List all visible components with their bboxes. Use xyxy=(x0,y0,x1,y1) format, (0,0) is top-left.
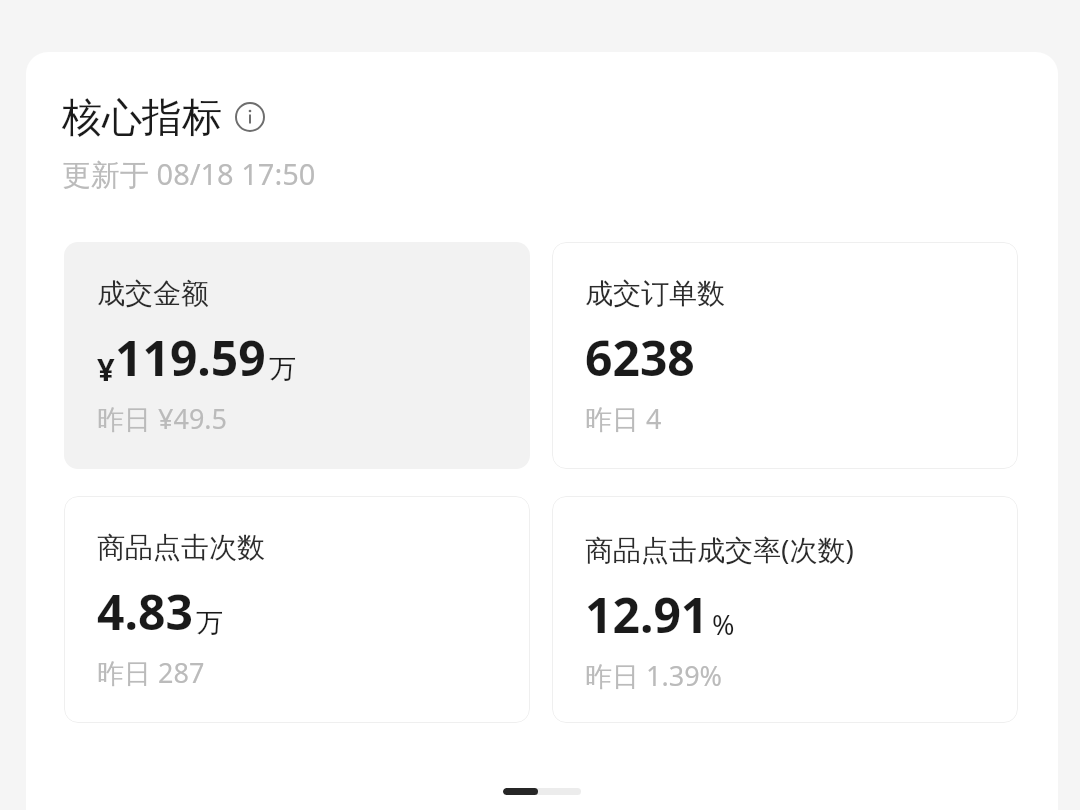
staticText: 万 xyxy=(196,606,223,640)
staticText: 成交订单数 xyxy=(585,276,725,311)
staticText: ¥ xyxy=(97,348,115,390)
staticText: 119.59 xyxy=(115,325,266,390)
staticText: 商品点击次数 xyxy=(97,530,265,565)
staticText: 昨日 1.39% xyxy=(585,657,723,694)
staticText: 成交金额 xyxy=(97,276,209,311)
button[interactable]: 商品点击次数 xyxy=(64,496,530,723)
button[interactable]: 商品点击成交率(次数) xyxy=(552,496,1018,723)
button[interactable]: Info xyxy=(235,102,265,132)
staticText: 核心指标 xyxy=(62,92,222,142)
button[interactable]: 成交订单数 xyxy=(552,242,1018,469)
staticText: % xyxy=(712,606,735,643)
staticText: 昨日 4 xyxy=(585,400,662,437)
staticText: 昨日 287 xyxy=(97,654,205,691)
staticText: 更新于 08/18 17:50 xyxy=(62,154,316,194)
staticText: 12.91 xyxy=(585,582,709,647)
staticText: 万 xyxy=(269,352,296,386)
button[interactable]: 成交金额 xyxy=(64,242,530,469)
staticText: 商品点击成交率(次数) xyxy=(585,530,854,568)
staticText: 昨日 ¥49.5 xyxy=(97,400,228,437)
staticText: 4.83 xyxy=(97,579,193,644)
staticText: 6238 xyxy=(585,325,695,390)
